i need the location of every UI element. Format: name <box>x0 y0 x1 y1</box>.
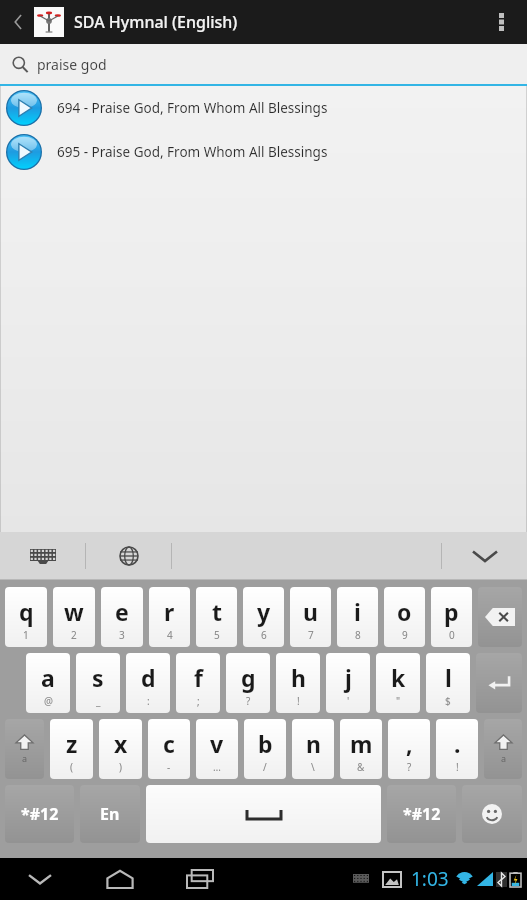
button[interactable]: b <box>244 719 286 779</box>
button[interactable]: k <box>376 653 420 713</box>
staticText: b <box>258 728 273 759</box>
staticText: u <box>303 596 318 627</box>
button[interactable]: r <box>149 587 190 647</box>
staticText: s <box>92 662 104 693</box>
staticText: 3 <box>119 628 125 642</box>
staticText: " <box>396 694 401 708</box>
button[interactable]: q <box>5 587 47 647</box>
button[interactable]: p <box>431 587 472 647</box>
staticText: m <box>350 728 373 759</box>
staticText: v <box>210 728 224 759</box>
staticText: l <box>445 662 452 693</box>
staticText: 9 <box>402 628 408 642</box>
staticText: f <box>194 662 203 693</box>
staticText: i <box>354 596 361 627</box>
staticText: . <box>454 728 461 759</box>
staticText: w <box>64 596 84 627</box>
button[interactable]: Hide keyboard <box>442 532 527 580</box>
staticText: ! <box>297 694 300 708</box>
staticText: r <box>164 596 175 627</box>
staticText: 7 <box>308 628 314 642</box>
button[interactable]: 694 - Praise God, From Whom All Blessing… <box>0 86 527 130</box>
staticText: 2 <box>71 628 77 642</box>
staticText: p <box>444 596 459 627</box>
button[interactable]: o <box>384 587 425 647</box>
button[interactable]: , <box>388 719 430 779</box>
button[interactable]: u <box>290 587 331 647</box>
staticText: , <box>406 728 413 759</box>
button[interactable]: *#12 <box>387 785 456 843</box>
staticText: & <box>357 760 365 774</box>
staticText: ( <box>70 760 73 774</box>
button[interactable]: Up <box>2 6 34 38</box>
button[interactable]: En <box>80 785 140 843</box>
button[interactable]: 695 - Praise God, From Whom All Blessing… <box>0 130 527 174</box>
button[interactable]: x <box>99 719 142 779</box>
button[interactable]: *#12 <box>5 785 74 843</box>
button[interactable]: Home <box>80 858 160 900</box>
staticText: 695 - Praise God, From Whom All Blessing… <box>57 143 328 161</box>
staticText: ' <box>347 694 350 708</box>
staticText: z <box>66 728 78 759</box>
staticText: j <box>345 662 352 693</box>
button[interactable]: a <box>26 653 70 713</box>
button[interactable]: t <box>196 587 237 647</box>
button[interactable]: Shift <box>484 719 522 779</box>
button[interactable]: f <box>176 653 220 713</box>
button[interactable]: s <box>76 653 120 713</box>
staticText: @ <box>44 694 53 708</box>
staticText: *#12 <box>21 803 59 825</box>
button[interactable]: Keyboard settings <box>0 532 85 580</box>
staticText: 1 <box>23 628 29 642</box>
button[interactable]: m <box>340 719 382 779</box>
button[interactable]: Change language <box>86 532 171 580</box>
staticText: x <box>114 728 128 759</box>
staticText: y <box>257 596 271 627</box>
button[interactable]: l <box>426 653 470 713</box>
staticText: 0 <box>449 628 455 642</box>
button[interactable]: i <box>337 587 378 647</box>
staticText: 6 <box>261 628 267 642</box>
button[interactable]: More options <box>481 2 521 42</box>
button[interactable]: e <box>101 587 143 647</box>
button[interactable]: n <box>292 719 334 779</box>
button[interactable]: Back <box>0 858 80 900</box>
button[interactable]: h <box>276 653 320 713</box>
button[interactable]: Shift <box>5 719 44 779</box>
button[interactable]: g <box>226 653 270 713</box>
staticText: $ <box>445 694 451 708</box>
staticText: … <box>213 760 221 774</box>
button[interactable]: c <box>148 719 190 779</box>
staticText: _ <box>96 694 101 708</box>
button[interactable]: y <box>243 587 284 647</box>
button[interactable]: . <box>436 719 478 779</box>
staticText: 4 <box>167 628 173 642</box>
staticText: - <box>167 760 171 774</box>
button[interactable]: Recent apps <box>160 858 240 900</box>
staticText: *#12 <box>403 803 441 825</box>
staticText: 1:03 <box>411 866 449 892</box>
button[interactable]: j <box>326 653 370 713</box>
button[interactable]: Enter <box>476 653 522 713</box>
button[interactable]: praise god <box>0 44 527 84</box>
staticText: 5 <box>214 628 220 642</box>
staticText: ! <box>456 760 459 774</box>
button[interactable]: Emoji <box>462 785 522 843</box>
staticText: ? <box>246 694 251 708</box>
button[interactable]: w <box>53 587 95 647</box>
button[interactable]: z <box>50 719 93 779</box>
staticText: a <box>501 752 507 764</box>
button[interactable]: Backspace <box>478 587 522 647</box>
staticText: praise god <box>37 55 107 74</box>
staticText: d <box>141 662 156 693</box>
staticText: n <box>306 728 321 759</box>
button[interactable]: Space <box>146 785 381 843</box>
staticText: q <box>19 596 34 627</box>
button[interactable]: v <box>196 719 238 779</box>
staticText: 8 <box>355 628 361 642</box>
staticText: c <box>163 728 175 759</box>
staticText: a <box>22 752 28 764</box>
staticText: t <box>212 596 222 627</box>
staticText: : <box>147 694 150 708</box>
button[interactable]: d <box>126 653 170 713</box>
